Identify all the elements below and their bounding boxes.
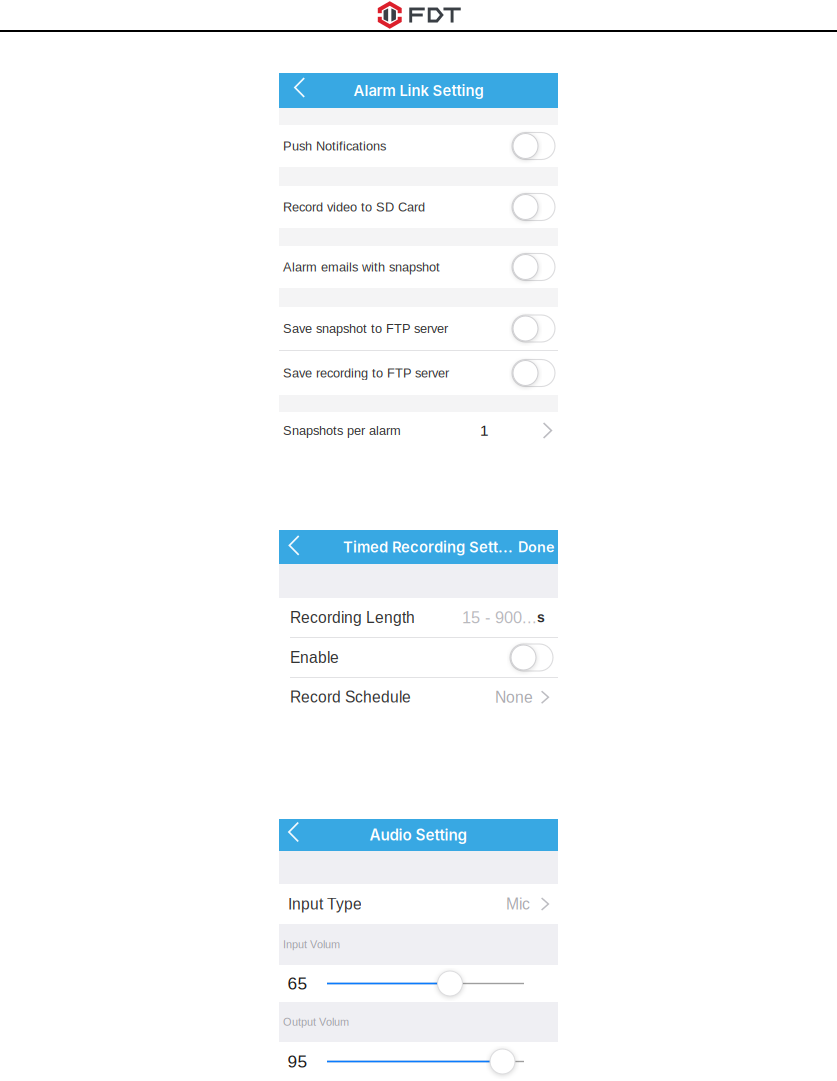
staticText: Input Volum <box>283 938 340 951</box>
staticText: Audio Setting <box>369 826 467 844</box>
button[interactable]: Save snapshot to FTP server <box>279 307 558 350</box>
button[interactable]: Record video to SD Card <box>279 186 558 228</box>
button[interactable]: Alarm emails with snapshot <box>279 246 558 288</box>
staticText: Output Volum <box>283 1016 349 1028</box>
staticText: Mic <box>506 895 530 913</box>
staticText: Alarm emails with snapshot <box>283 260 440 274</box>
button[interactable]: Push Notifications <box>279 125 558 167</box>
button[interactable]: Record Schedule <box>279 678 558 705</box>
staticText: Record Schedule <box>290 688 411 706</box>
staticText: Save snapshot to FTP server <box>283 321 448 336</box>
staticText: Save recording to FTP server <box>283 366 449 380</box>
button[interactable]: Input Type <box>279 884 558 924</box>
staticText: Snapshots per alarm <box>283 423 401 438</box>
staticText: 95 <box>287 1052 307 1071</box>
button[interactable]: Recording Length <box>279 598 558 637</box>
staticText: Done <box>518 538 555 556</box>
button[interactable]: Back <box>279 530 319 564</box>
button[interactable]: Done <box>518 530 558 564</box>
staticText: 65 <box>287 974 307 993</box>
button[interactable]: Enable <box>279 638 558 677</box>
staticText: 15 - 900... <box>462 608 537 627</box>
staticText: s <box>537 610 545 625</box>
staticText: Timed Recording Sett... <box>343 538 513 556</box>
button[interactable]: Save recording to FTP server <box>279 351 558 395</box>
staticText: 1 <box>480 422 489 439</box>
staticText: Enable <box>290 649 339 666</box>
staticText: Alarm Link Setting <box>353 81 483 99</box>
staticText: Record video to SD Card <box>283 200 425 214</box>
staticText: Input Type <box>288 895 362 913</box>
staticText: Push Notifications <box>283 139 386 153</box>
staticText: Recording Length <box>290 609 415 626</box>
staticText: None <box>495 688 533 706</box>
button[interactable]: Back <box>279 73 319 108</box>
button[interactable]: Snapshots per alarm <box>279 412 558 449</box>
button[interactable]: Back <box>279 819 319 851</box>
